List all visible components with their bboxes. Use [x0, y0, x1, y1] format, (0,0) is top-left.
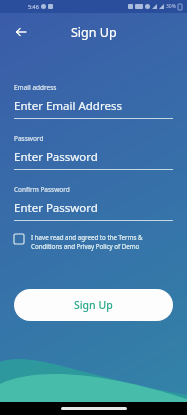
staticText: Enter Password	[14, 200, 98, 216]
staticText: Enter Email Address	[14, 98, 122, 114]
staticText: I have read and agreed to the Terms & Co…	[31, 233, 173, 251]
staticText: Email address	[14, 83, 57, 92]
staticText: Sign Up	[74, 298, 113, 312]
staticText: 5:46	[28, 3, 39, 10]
button[interactable]: Enter Password	[14, 200, 173, 216]
button[interactable]: Enter Password	[14, 149, 173, 165]
button[interactable]: Sign Up	[14, 289, 173, 321]
button[interactable]: Enter Email Address	[14, 98, 173, 114]
staticText: Sign Up	[71, 24, 117, 41]
button[interactable]: Back	[6, 17, 36, 47]
staticText: Enter Password	[14, 149, 98, 165]
button[interactable]: I have read and agreed to the Terms & Co…	[14, 231, 173, 253]
staticText: Confirm Password	[14, 185, 70, 194]
staticText: 30%	[166, 3, 176, 10]
staticText: Password	[14, 134, 44, 143]
